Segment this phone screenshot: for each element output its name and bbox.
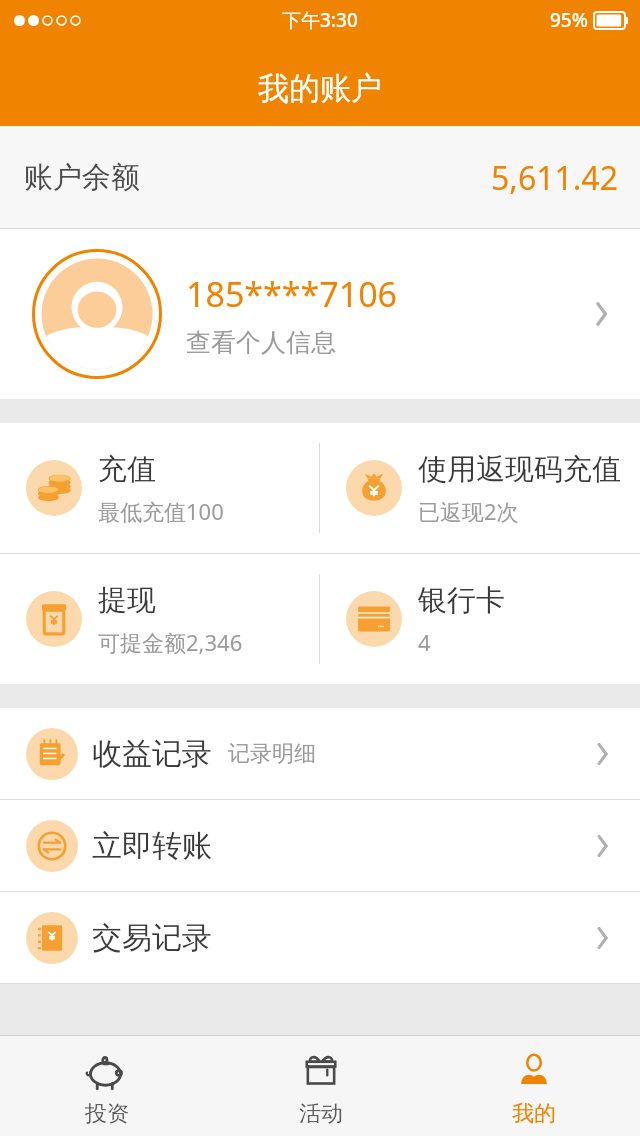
button[interactable]: 充值 (0, 423, 319, 553)
staticText: 已返现2次 (418, 496, 519, 526)
staticText: 收益记录 (92, 735, 212, 773)
staticText: 活动 (299, 1100, 343, 1128)
staticText: 充值 (98, 451, 156, 488)
staticText: 记录明细 (228, 740, 316, 768)
staticText: 查看个人信息 (186, 327, 336, 358)
button[interactable]: 立即转账 (0, 800, 640, 891)
button[interactable]: 使用返现码充值 (320, 423, 640, 553)
button[interactable]: 185****7106 (0, 229, 640, 399)
staticText: 下午3:30 (282, 7, 358, 33)
staticText: 我的 (512, 1100, 556, 1128)
button[interactable]: 银行卡 (320, 554, 640, 684)
button[interactable]: 我的 (427, 1036, 640, 1136)
staticText: 我的账户 (258, 69, 382, 108)
staticText: 使用返现码充值 (418, 451, 621, 488)
staticText: 可提金额2,346 (98, 627, 243, 657)
button[interactable]: 活动 (214, 1036, 427, 1136)
staticText: 立即转账 (92, 827, 212, 865)
staticText: 5,611.42 (491, 156, 618, 200)
staticText: 185****7106 (186, 271, 398, 317)
button[interactable]: 提现 (0, 554, 319, 684)
button[interactable]: 投资 (0, 1036, 214, 1136)
button[interactable]: 交易记录 (0, 892, 640, 983)
staticText: 95% (550, 7, 588, 33)
staticText: 提现 (98, 582, 156, 619)
staticText: 银行卡 (418, 582, 505, 619)
staticText: 账户余额 (24, 159, 140, 196)
staticText: 最低充值100 (98, 496, 224, 526)
staticText: 投资 (85, 1100, 129, 1128)
button[interactable]: 收益记录 (0, 708, 640, 799)
staticText: 4 (418, 627, 431, 657)
staticText: 交易记录 (92, 919, 212, 957)
